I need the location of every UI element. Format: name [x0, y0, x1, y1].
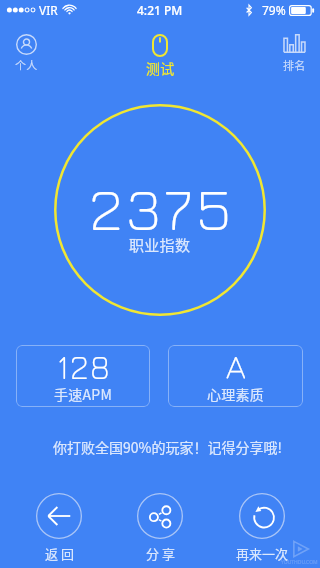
staticText: 个人 — [15, 57, 38, 73]
staticText: 测试 — [146, 58, 175, 78]
staticText: 4:21 PM — [137, 2, 183, 18]
button[interactable]: 128 — [16, 345, 150, 407]
staticText: YOUTHDU.COM — [281, 559, 318, 566]
button[interactable]: 排名 — [260, 29, 320, 75]
button[interactable]: Play again — [222, 493, 302, 561]
staticText: 再来一次 — [236, 544, 289, 563]
button[interactable]: 个人 — [0, 29, 60, 75]
staticText: 2375 — [89, 172, 236, 243]
button[interactable]: 测试 — [126, 29, 194, 75]
staticText: 手速APM — [54, 384, 113, 404]
staticText: 128 — [57, 347, 112, 386]
button[interactable]: Share — [120, 493, 200, 561]
staticText: 分 享 — [146, 544, 175, 563]
staticText: 排名 — [283, 57, 306, 73]
button[interactable]: Back — [19, 493, 99, 561]
button[interactable]: A — [168, 345, 303, 407]
staticText: 职业指数 — [129, 234, 191, 256]
staticText: 你打败全国90%的玩家！记得分享哦! — [53, 437, 282, 457]
staticText: 心理素质 — [207, 384, 265, 404]
staticText: VIR — [39, 2, 58, 18]
staticText: A — [226, 347, 248, 386]
staticText: 返 回 — [45, 544, 74, 563]
staticText: 79% — [262, 2, 286, 18]
